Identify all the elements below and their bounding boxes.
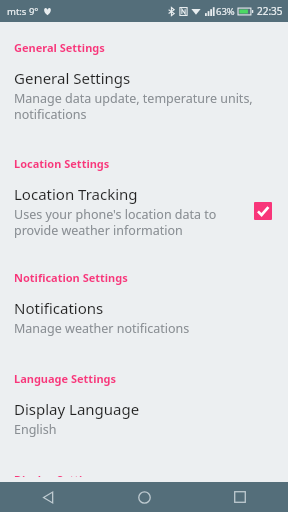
button[interactable]: Notifications [0,290,288,347]
button[interactable]: Display Language [0,391,288,448]
staticText: Display Language [14,399,140,419]
button[interactable]: Home [96,482,192,512]
staticText: mt:s 9° [7,5,39,18]
button[interactable]: Location Tracking toggle [250,198,276,224]
staticText: Location Tracking [14,184,138,204]
staticText: Display Settings [14,472,102,477]
staticText: Uses your phone's location data to provi… [14,206,240,238]
staticText: Language Settings [14,371,117,386]
button[interactable]: Back [0,482,96,512]
button[interactable]: Location Tracking [0,176,288,248]
staticText: 22:35 [257,4,283,18]
staticText: Manage data update, temperature units, n… [14,90,276,122]
staticText: General Settings [14,68,131,88]
staticText: English [14,421,57,438]
staticText: Location Settings [14,156,110,171]
button[interactable]: General Settings [0,60,288,132]
staticText: Manage weather notifications [14,320,190,337]
button[interactable]: Recent apps [192,482,288,512]
staticText: Notification Settings [14,270,128,285]
staticText: 63% [216,5,235,18]
staticText: General Settings [14,40,105,55]
staticText: Notifications [14,298,104,318]
